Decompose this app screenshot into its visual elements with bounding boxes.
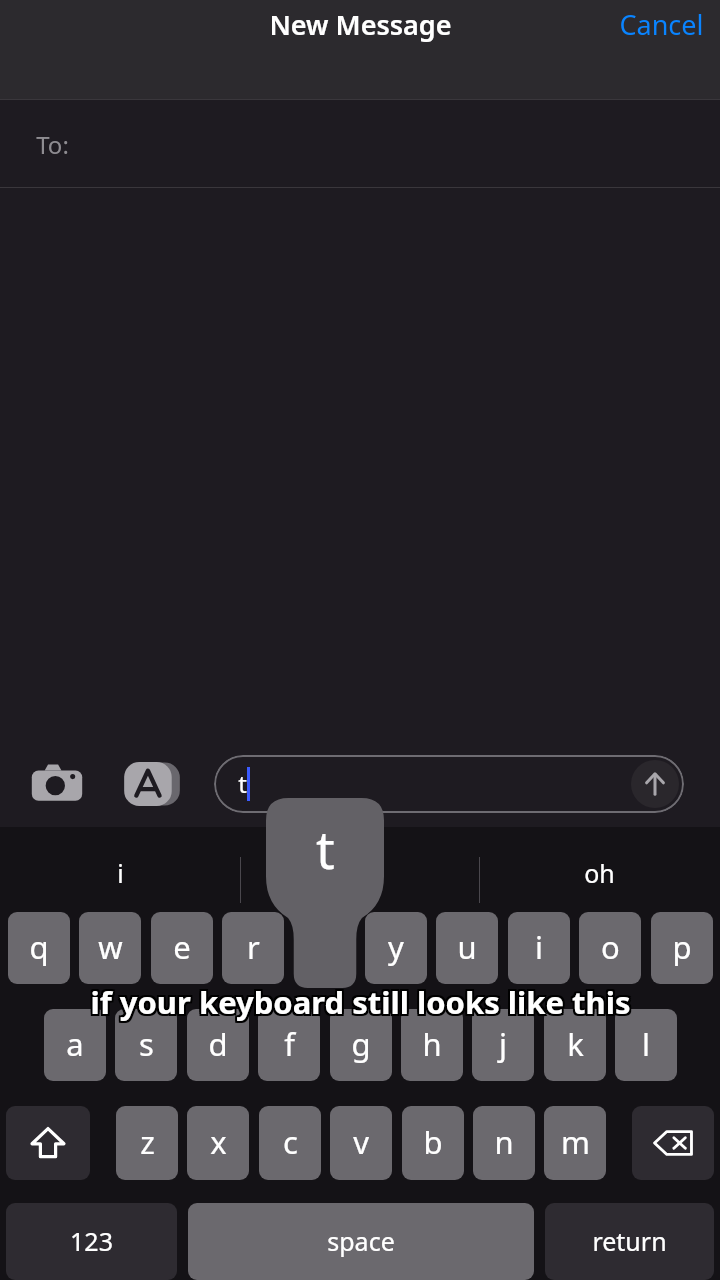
staticText: if your keyboard still looks like this (92, 983, 633, 1025)
staticText: if your keyboard still looks like this (92, 979, 633, 1021)
staticText: return (592, 1224, 667, 1258)
button[interactable]: j (472, 1009, 534, 1081)
button[interactable]: o (579, 912, 641, 984)
staticText: n (494, 1121, 514, 1163)
button[interactable]: e (151, 912, 213, 984)
staticText: if your keyboard still looks like this (88, 979, 629, 1021)
staticText: if your keyboard still looks like this (88, 981, 629, 1023)
staticText: k (567, 1023, 584, 1065)
staticText: p (672, 926, 692, 968)
staticText: m (561, 1121, 590, 1163)
button[interactable]: u (436, 912, 498, 984)
button[interactable]: To: (0, 100, 720, 188)
staticText: t (316, 813, 335, 884)
staticText: if your keyboard still looks like this (92, 981, 633, 1023)
button[interactable]: m (544, 1106, 606, 1180)
button[interactable]: q (8, 912, 70, 984)
button[interactable]: oh (479, 827, 720, 913)
staticText: To: (36, 128, 69, 161)
staticText: i (535, 926, 543, 968)
staticText: if your keyboard still looks like this (90, 979, 631, 1021)
button[interactable]: s (115, 1009, 177, 1081)
button[interactable]: f (258, 1009, 320, 1081)
button[interactable]: p (651, 912, 713, 984)
button[interactable]: n (473, 1106, 535, 1180)
staticText: if your keyboard still looks like this (88, 983, 629, 1025)
button[interactable]: Apps (118, 750, 186, 818)
button[interactable]: Backspace (632, 1106, 714, 1180)
button[interactable]: g (330, 1009, 392, 1081)
staticText: oh (584, 856, 615, 890)
staticText: i (117, 856, 124, 890)
staticText: l (642, 1023, 650, 1065)
staticText: if your keyboard still looks like this (90, 983, 631, 1025)
staticText: space (327, 1224, 395, 1258)
staticText: j (499, 1023, 507, 1065)
staticText: q (29, 926, 49, 968)
button[interactable]: 123 (6, 1203, 177, 1280)
staticText: g (351, 1023, 371, 1065)
button[interactable]: return (545, 1203, 714, 1280)
button[interactable]: Camera (23, 750, 91, 818)
button[interactable]: i (508, 912, 570, 984)
staticText: c (283, 1121, 298, 1163)
button[interactable]: l (615, 1009, 677, 1081)
staticText: v (353, 1121, 369, 1163)
button[interactable]: h (401, 1009, 463, 1081)
button[interactable]: d (187, 1009, 249, 1081)
button[interactable]: Cancel (603, 0, 720, 49)
staticText: x (210, 1121, 227, 1163)
button[interactable]: t (214, 755, 684, 813)
staticText: d (208, 1023, 228, 1065)
button[interactable]: v (330, 1106, 392, 1180)
button[interactable]: a (44, 1009, 106, 1081)
staticText: e (173, 926, 191, 968)
staticText: y (388, 926, 404, 968)
staticText: w (98, 926, 123, 968)
staticText: r (247, 926, 260, 968)
button[interactable]: w (79, 912, 141, 984)
staticText: h (422, 1023, 442, 1065)
button[interactable]: Shift (6, 1106, 90, 1180)
staticText: t (238, 767, 247, 800)
button[interactable]: k (544, 1009, 606, 1081)
staticText: 123 (70, 1224, 113, 1258)
staticText: s (139, 1023, 154, 1065)
button[interactable]: r (222, 912, 284, 984)
button[interactable]: b (402, 1106, 464, 1180)
staticText: z (140, 1121, 155, 1163)
staticText: New Message (269, 6, 452, 43)
button[interactable]: y (365, 912, 427, 984)
button[interactable]: Send (631, 760, 679, 808)
staticText: f (284, 1023, 295, 1065)
button[interactable]: z (116, 1106, 178, 1180)
staticText: a (66, 1023, 84, 1065)
staticText: Cancel (619, 6, 704, 43)
staticText: if your keyboard still looks like this (90, 981, 631, 1023)
button[interactable]: space (188, 1203, 534, 1280)
button[interactable]: x (187, 1106, 249, 1180)
button[interactable]: th (240, 827, 479, 913)
staticText: b (423, 1121, 443, 1163)
button[interactable]: c (259, 1106, 321, 1180)
button[interactable]: i (0, 827, 240, 913)
staticText: u (457, 926, 477, 968)
button[interactable]: t (294, 912, 356, 984)
staticText: o (601, 926, 620, 968)
